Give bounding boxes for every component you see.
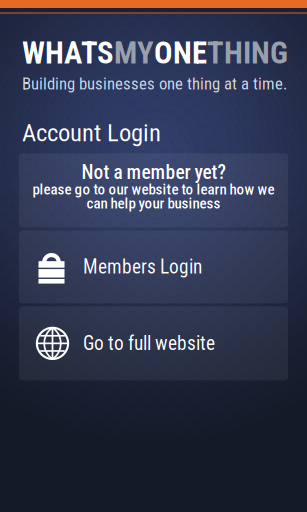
staticText: Members Login	[83, 256, 202, 278]
staticText: WHATS	[22, 35, 114, 71]
button[interactable]: Members Login	[19, 230, 288, 303]
staticText: please go to our website to learn how we	[32, 180, 274, 198]
staticText: THING	[207, 35, 288, 71]
staticText: Account Login	[22, 118, 161, 147]
staticText: Building businesses one thing at a time.	[22, 74, 287, 93]
staticText: MY	[114, 35, 154, 71]
staticText: ONE	[154, 35, 207, 71]
button[interactable]: Go to full website	[19, 306, 288, 380]
staticText: can help your business	[86, 194, 220, 212]
staticText: Go to full website	[83, 332, 215, 355]
staticText: Not a member yet?	[81, 161, 225, 184]
